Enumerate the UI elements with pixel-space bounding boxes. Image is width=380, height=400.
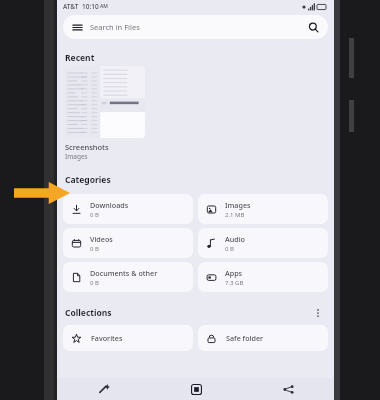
staticText: 7.3 GB (225, 279, 244, 287)
staticText: Audio (225, 234, 246, 244)
button[interactable]: Apps (198, 262, 328, 292)
button[interactable]: Safe folder (198, 325, 328, 351)
staticText: 0 B (90, 279, 99, 287)
button[interactable]: Downloads (63, 194, 193, 224)
staticText: AM (100, 3, 108, 10)
staticText: Favorites (91, 333, 123, 343)
button[interactable]: Audio (198, 228, 328, 258)
staticText: 0 B (90, 211, 99, 219)
staticText: Search in Files (90, 22, 140, 32)
staticText: 0 B (90, 245, 99, 253)
button[interactable]: Videos (63, 228, 193, 258)
staticText: Safe folder (226, 333, 264, 343)
button[interactable]: Clean (57, 378, 150, 400)
staticText: Downloads (90, 200, 129, 210)
button[interactable]: Images (198, 194, 328, 224)
staticText: Apps (225, 268, 243, 278)
button[interactable]: Browse (150, 378, 242, 400)
staticText: Screenshots (65, 142, 109, 152)
staticText: Recent (65, 52, 95, 64)
button[interactable]: Menu (63, 15, 328, 39)
staticText: 2.1 MB (225, 211, 245, 219)
staticText: Categories (65, 174, 111, 186)
button[interactable]: Share (242, 378, 334, 400)
button[interactable] (65, 66, 145, 138)
staticText: Documents & other (90, 268, 158, 278)
staticText: Videos (90, 234, 113, 244)
staticText: Images (225, 200, 251, 210)
staticText: 0 B (225, 245, 234, 253)
other: Menu (72, 22, 83, 33)
other: Search (308, 22, 319, 33)
button[interactable]: Documents & other (63, 262, 193, 292)
staticText: AT&T (63, 2, 79, 11)
staticText: Images (65, 152, 88, 161)
button[interactable]: More options (310, 305, 326, 321)
button[interactable]: Favorites (63, 325, 193, 351)
staticText: 10:10 (82, 2, 99, 11)
staticText: Collections (65, 307, 112, 319)
